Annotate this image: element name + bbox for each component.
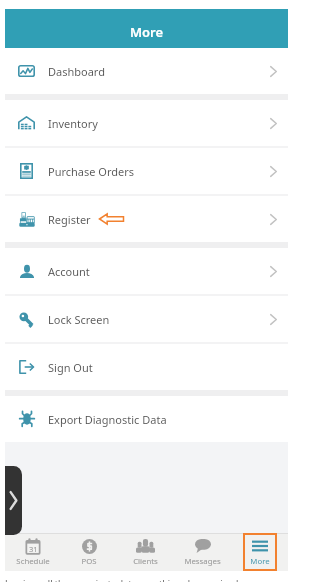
button[interactable]: More — [243, 533, 277, 571]
button[interactable]: Lock Screen — [5, 296, 288, 342]
staticText: More — [250, 556, 270, 567]
button[interactable]: 31 — [16, 537, 50, 567]
staticText: Log in, well there are just a lot more t… — [5, 577, 276, 582]
button[interactable]: Account — [5, 248, 288, 294]
button[interactable]: Clients — [133, 537, 158, 567]
button[interactable]: Messages — [184, 537, 221, 567]
staticText: POS — [81, 556, 97, 567]
button[interactable]: Sign Out — [5, 344, 288, 390]
staticText: Dashboard — [48, 64, 105, 79]
button[interactable]: Purchase Orders — [5, 148, 288, 194]
button[interactable]: Export Diagnostic Data — [5, 396, 288, 442]
staticText: Messages — [184, 556, 221, 567]
staticText: Purchase Orders — [48, 164, 135, 179]
staticText: Register — [48, 212, 91, 227]
staticText: Inventory — [48, 116, 98, 131]
staticText: Account — [48, 264, 90, 279]
staticText: Export Diagnostic Data — [48, 412, 167, 427]
staticText: Lock Screen — [48, 312, 110, 327]
button[interactable]: POS — [81, 537, 97, 567]
staticText: More — [130, 23, 164, 41]
staticText: Schedule — [16, 556, 50, 567]
button[interactable]: Dashboard — [5, 48, 288, 94]
button[interactable]: Register — [5, 196, 288, 242]
staticText: Clients — [133, 556, 158, 567]
button[interactable]: Open drawer — [5, 466, 22, 535]
staticText: Sign Out — [48, 360, 93, 375]
staticText: 31 — [29, 544, 38, 554]
button[interactable]: Inventory — [5, 100, 288, 146]
